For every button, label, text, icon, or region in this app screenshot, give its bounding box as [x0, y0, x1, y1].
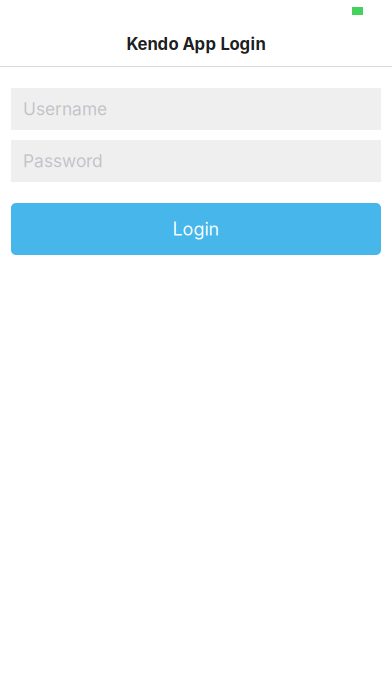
staticText: Kendo App Login	[126, 34, 265, 54]
button[interactable]: Username	[11, 88, 381, 130]
button[interactable]: Password	[11, 140, 381, 182]
button[interactable]: Login	[11, 203, 381, 255]
staticText: Password	[23, 150, 103, 171]
staticText: Username	[23, 98, 107, 119]
staticText: Login	[172, 218, 219, 240]
